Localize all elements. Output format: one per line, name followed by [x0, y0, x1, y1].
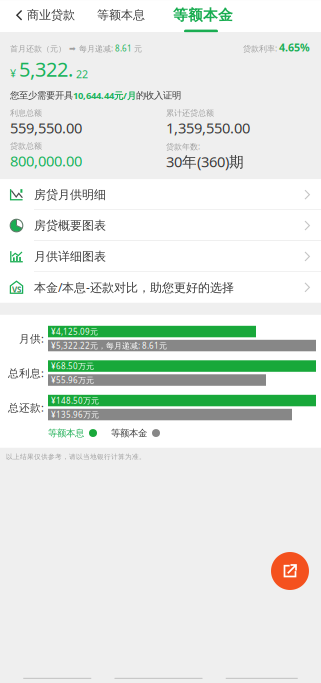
staticText: ➡ — [66, 44, 79, 53]
staticText: ¥4,125.09元 — [51, 326, 98, 337]
button[interactable]: 房贷月供明细 — [0, 179, 321, 210]
staticText: 房贷概要图表 — [34, 218, 106, 233]
staticText: ¥5,322.22元，每月递减: 8.61元 — [51, 340, 167, 351]
staticText: 10,644.44元/月 — [73, 89, 136, 102]
staticText: 总还款: — [8, 400, 44, 415]
staticText: 以上结果仅供参考，请以当地银行计算为准。 — [6, 453, 146, 461]
staticText: 本金/本息-还款对比，助您更好的选择 — [34, 279, 234, 295]
staticText: 房贷月供明细 — [34, 187, 106, 202]
button[interactable]: 商业贷款 — [0, 0, 81, 30]
staticText: 等额本金 — [173, 6, 233, 24]
button[interactable]: VS — [0, 272, 321, 303]
staticText: 559,550.00 — [10, 118, 82, 137]
staticText: 等额本金 — [111, 427, 147, 439]
staticText: 贷款年数: — [166, 141, 200, 152]
staticText: 您至少需要开具 — [10, 90, 73, 101]
staticText: 22 — [76, 67, 88, 81]
staticText: 每月递减: — [79, 43, 115, 54]
staticText: 首月还款（元） — [10, 44, 66, 54]
staticText: 等额本息 — [97, 8, 145, 22]
staticText: 商业贷款 — [27, 8, 75, 22]
staticText: 30年(360)期 — [166, 152, 244, 171]
staticText: 总利息: — [8, 366, 44, 380]
staticText: 月供详细图表 — [34, 249, 106, 264]
button[interactable]: 月供详细图表 — [0, 241, 321, 272]
button[interactable]: 房贷概要图表 — [0, 210, 321, 241]
button[interactable]: 等额本息 — [81, 0, 157, 30]
staticText: 4.65% — [279, 40, 310, 54]
staticText: ¥148.50万元 — [51, 395, 99, 406]
staticText: ¥ — [10, 66, 16, 80]
staticText: 元 — [132, 44, 142, 54]
staticText: 5,322. — [19, 56, 73, 82]
staticText: 1,359,550.00 — [166, 118, 250, 137]
staticText: 贷款总额 — [10, 141, 42, 151]
staticText: ¥68.50万元 — [51, 361, 94, 371]
staticText: 累计还贷总额 — [166, 108, 214, 118]
staticText: 等额本息 — [48, 427, 84, 439]
staticText: VS — [12, 284, 21, 295]
staticText: 利息总额 — [10, 108, 42, 118]
button[interactable]: 等额本金 — [157, 0, 245, 30]
staticText: 的收入证明 — [136, 90, 181, 101]
staticText: 8.61 — [115, 43, 132, 54]
staticText: 800,000.00 — [10, 151, 82, 170]
button[interactable]: 分享 — [271, 552, 309, 590]
staticText: 月供: — [19, 331, 44, 346]
staticText: ¥135.96万元 — [51, 409, 99, 420]
staticText: 贷款利率: — [243, 43, 279, 54]
staticText: ¥55.96万元 — [51, 375, 94, 385]
